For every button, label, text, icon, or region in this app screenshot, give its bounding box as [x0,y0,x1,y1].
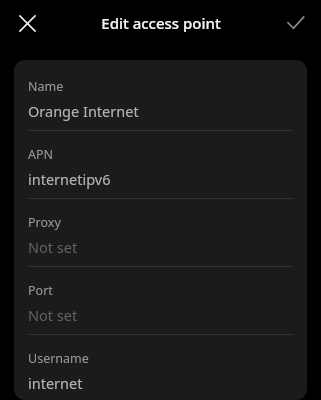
staticText: APN [28,146,54,163]
button[interactable]: Close [9,5,45,41]
staticText: Edit access point [101,13,221,33]
staticText: Not set [28,305,78,325]
button[interactable]: Username [14,344,307,400]
staticText: internetipv6 [28,169,111,189]
button[interactable]: Name [14,72,307,140]
staticText: Username [28,350,89,367]
staticText: Orange Internet [28,101,139,121]
staticText: Name [28,78,64,95]
staticText: Not set [28,237,78,257]
button[interactable]: Port [14,276,307,344]
staticText: Port [28,282,53,299]
button[interactable]: Save [277,5,313,41]
staticText: internet [28,373,83,393]
staticText: Proxy [28,214,61,231]
button[interactable]: Proxy [14,208,307,276]
button[interactable]: APN [14,140,307,208]
